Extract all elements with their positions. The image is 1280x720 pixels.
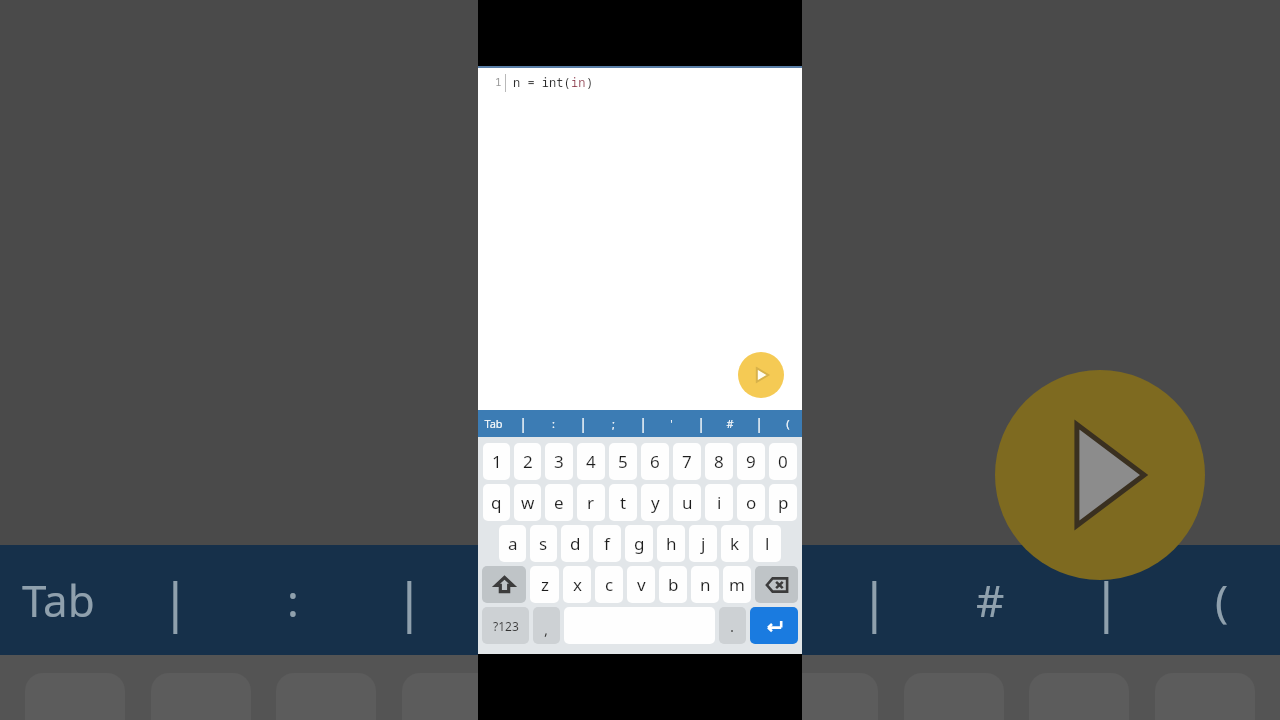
staticText: '	[670, 416, 673, 431]
staticText: 6	[650, 450, 660, 473]
staticText: ;	[520, 570, 532, 630]
button[interactable]: 2	[514, 443, 541, 480]
staticText: z	[541, 573, 549, 596]
staticText: 7	[682, 450, 692, 473]
staticText: 4	[586, 450, 596, 473]
button[interactable]: p	[769, 484, 797, 521]
button[interactable]: n	[691, 566, 719, 603]
button[interactable]: |	[568, 410, 598, 437]
button[interactable]: |	[686, 410, 715, 437]
staticText: r	[587, 491, 595, 514]
staticText: |	[395, 565, 424, 636]
button[interactable]: Enter	[750, 607, 798, 644]
button[interactable]: '	[657, 410, 686, 437]
button[interactable]: |	[744, 410, 773, 437]
button[interactable]: 7	[673, 443, 701, 480]
staticText: )	[586, 74, 594, 90]
button[interactable]: ,	[533, 607, 560, 644]
staticText: (	[786, 416, 790, 431]
button[interactable]: Backspace	[755, 566, 798, 603]
button[interactable]: m	[723, 566, 751, 603]
button[interactable]: i	[705, 484, 733, 521]
staticText: |	[1092, 565, 1121, 636]
button[interactable]: b	[659, 566, 687, 603]
button[interactable]: Shift	[482, 566, 526, 603]
staticText: (	[1215, 570, 1229, 630]
staticText: l	[765, 532, 770, 555]
button[interactable]: #	[715, 410, 744, 437]
button[interactable]: e	[545, 484, 573, 521]
staticText: |	[697, 414, 705, 433]
staticText: 5	[618, 450, 628, 473]
button[interactable]: :	[538, 410, 568, 437]
button[interactable]: r	[577, 484, 605, 521]
button[interactable]: z	[530, 566, 559, 603]
staticText: y	[651, 491, 660, 514]
button[interactable]: 5	[609, 443, 637, 480]
staticText: |	[161, 565, 190, 636]
button[interactable]: f	[593, 525, 621, 562]
staticText: j	[701, 532, 706, 555]
button[interactable]: h	[657, 525, 685, 562]
staticText: a	[508, 532, 518, 555]
staticText: n	[700, 573, 711, 596]
button[interactable]: 9	[737, 443, 765, 480]
staticText: v	[637, 573, 646, 596]
staticText: d	[570, 532, 581, 555]
button[interactable]: Tab	[478, 410, 508, 437]
button[interactable]: 1	[483, 443, 510, 480]
staticText: |	[579, 414, 587, 433]
button[interactable]: j	[689, 525, 717, 562]
staticText: #	[726, 416, 734, 431]
staticText: |	[639, 414, 647, 433]
button[interactable]: q	[483, 484, 510, 521]
staticText: n = int(	[513, 74, 571, 90]
staticText: |	[519, 414, 527, 433]
button[interactable]: 4	[577, 443, 605, 480]
button[interactable]: d	[561, 525, 589, 562]
button[interactable]: 0	[769, 443, 797, 480]
button[interactable]: k	[721, 525, 749, 562]
button[interactable]: s	[530, 525, 557, 562]
staticText: 1	[495, 74, 502, 89]
button[interactable]: (	[773, 410, 802, 437]
staticText: u	[682, 491, 693, 514]
button[interactable]: Run	[738, 352, 784, 398]
button[interactable]: 8	[705, 443, 733, 480]
staticText: f	[604, 532, 610, 555]
staticText: 3	[554, 450, 564, 473]
staticText: m	[729, 573, 745, 596]
staticText: p	[778, 491, 789, 514]
button[interactable]: l	[753, 525, 781, 562]
button[interactable]: o	[737, 484, 765, 521]
button[interactable]: g	[625, 525, 653, 562]
staticText: :	[552, 416, 555, 431]
staticText: 1	[492, 450, 502, 473]
button[interactable]: c	[595, 566, 623, 603]
staticText: Tab	[484, 416, 503, 431]
staticText: |	[860, 565, 889, 636]
staticText: q	[491, 491, 502, 514]
staticText: ,	[544, 619, 549, 639]
staticText: x	[573, 573, 582, 596]
button[interactable]: y	[641, 484, 669, 521]
staticText: e	[554, 491, 564, 514]
button[interactable]: 6	[641, 443, 669, 480]
button[interactable]: |	[628, 410, 657, 437]
button[interactable]: 3	[545, 443, 573, 480]
button[interactable]: u	[673, 484, 701, 521]
staticText: 9	[746, 450, 756, 473]
button[interactable]: t	[609, 484, 637, 521]
button[interactable]: v	[627, 566, 655, 603]
staticText: |	[755, 414, 763, 433]
button[interactable]: .	[719, 607, 746, 644]
button[interactable]: w	[514, 484, 541, 521]
button[interactable]: ?123	[482, 607, 529, 644]
staticText: #	[976, 570, 1005, 630]
button[interactable]: x	[563, 566, 591, 603]
button[interactable]: ;	[598, 410, 628, 437]
button[interactable]: |	[508, 410, 538, 437]
staticText: .	[730, 616, 735, 636]
button[interactable]: a	[499, 525, 526, 562]
